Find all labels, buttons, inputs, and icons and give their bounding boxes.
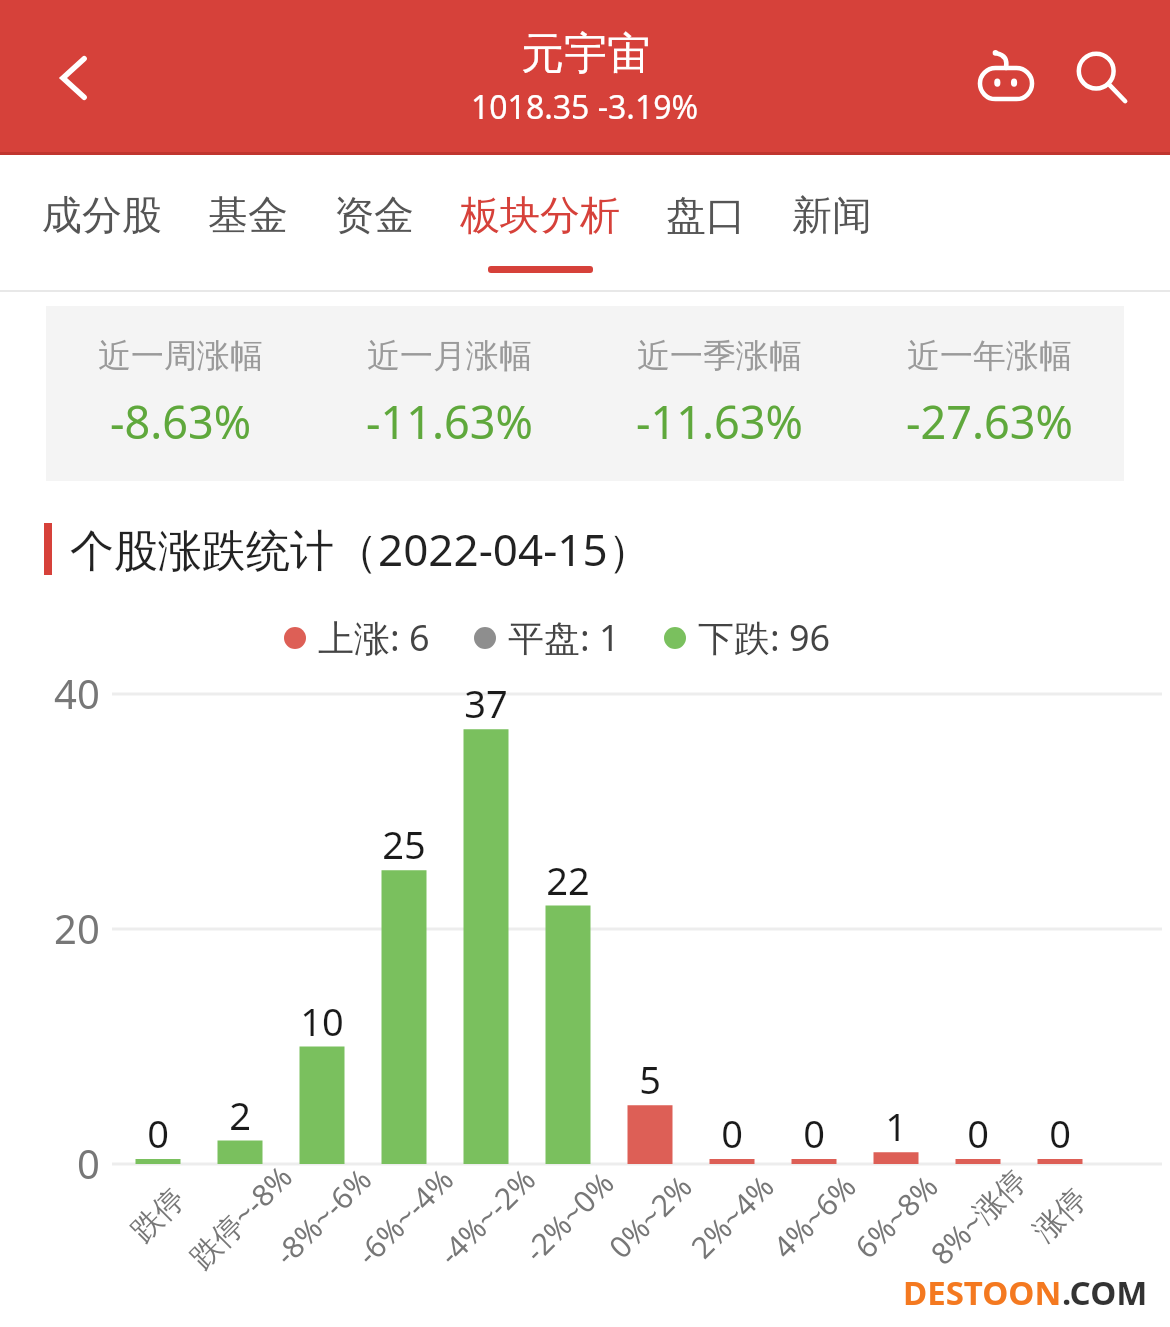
staticText: -8%~-6% [265,1159,380,1274]
button[interactable]: 上涨: 6 [284,613,430,662]
staticText: 盘口 [666,190,746,240]
staticText: 基金 [208,190,288,240]
staticText: 0%~2% [599,1166,700,1267]
button[interactable]: 资金 [334,155,414,292]
button[interactable]: AI assistant [958,30,1054,126]
staticText: 22 [546,854,590,906]
staticText: 4%~6% [763,1166,864,1267]
button[interactable]: 平盘: 1 [474,613,620,662]
staticText: -11.63% [636,391,803,452]
staticText: -4%~-2% [429,1159,544,1274]
staticText: 成分股 [42,190,162,240]
button[interactable]: 成分股 [42,155,162,292]
staticText: 20 [54,901,100,955]
staticText: 1 [885,1100,907,1152]
button[interactable]: Back [28,32,120,124]
staticText: DESTOON [903,1270,1062,1315]
staticText: 10 [300,995,344,1047]
button[interactable]: 盘口 [666,155,746,292]
staticText: 近一周涨幅 [98,335,263,377]
staticText: 新闻 [792,190,872,240]
staticText: 跌停 [123,1180,193,1250]
button[interactable]: 新闻 [792,155,872,292]
staticText: 资金 [334,190,414,240]
staticText: 下跌: 96 [698,613,831,662]
staticText: 近一季涨幅 [637,335,802,377]
button[interactable]: 下跌: 96 [664,613,831,662]
staticText: 近一年涨幅 [907,335,1072,377]
button[interactable]: 基金 [208,155,288,292]
staticText: 平盘: 1 [508,613,620,662]
staticText: 8%~涨停 [921,1160,1035,1273]
staticText: 近一月涨幅 [367,335,532,377]
staticText: 1018.35 -3.19% [471,85,699,129]
staticText: 个股涨跌统计（2022-04-15） [70,519,652,579]
staticText: -8.63% [110,391,252,452]
button[interactable]: 近一年涨幅 [854,335,1124,452]
staticText: -27.63% [906,391,1073,452]
staticText: 0 [77,1136,100,1190]
staticText: 37 [464,677,508,729]
staticText: 25 [382,818,426,870]
staticText: 6%~8% [845,1166,946,1267]
staticText: 40 [54,666,100,720]
button[interactable]: 个股涨跌统计（2022-04-15） [0,519,1170,579]
staticText: 0 [147,1107,169,1159]
staticText: 2 [229,1089,251,1141]
staticText: 涨停 [1025,1180,1095,1250]
button[interactable]: 板块分析 [460,155,620,292]
staticText: 元宇宙 [521,27,650,81]
staticText: 0 [1049,1107,1071,1159]
staticText: 0 [721,1107,743,1159]
staticText: .COM [1062,1270,1148,1315]
staticText: 5 [639,1053,661,1105]
button[interactable]: Search [1054,30,1150,126]
staticText: 板块分析 [460,190,620,240]
staticText: 跌停~-8% [180,1156,301,1277]
staticText: -2%~0% [515,1163,622,1270]
button[interactable]: 近一月涨幅 [315,335,584,452]
staticText: 0 [803,1107,825,1159]
staticText: -6%~-4% [347,1159,462,1274]
button[interactable]: 近一周涨幅 [46,335,315,452]
staticText: -11.63% [366,391,533,452]
staticText: 2%~4% [681,1166,782,1267]
staticText: 上涨: 6 [318,613,430,662]
staticText: 0 [967,1107,989,1159]
button[interactable]: 近一季涨幅 [584,335,854,452]
